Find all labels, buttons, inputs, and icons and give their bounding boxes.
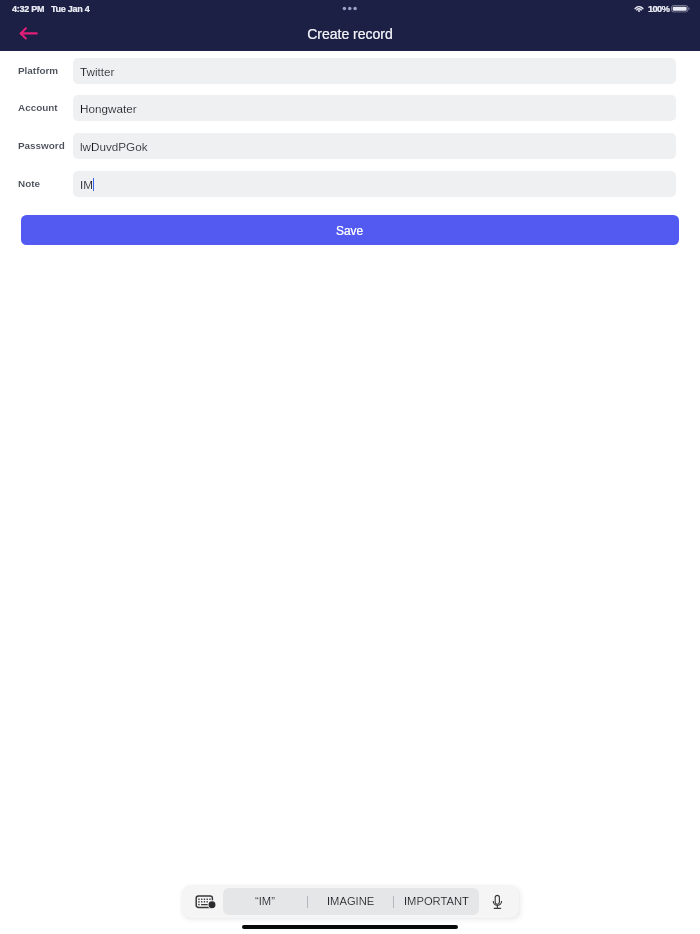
staticText: IMPORTANT [404, 895, 469, 908]
staticText: Account [18, 102, 58, 113]
button[interactable]: IMAGINE [308, 888, 393, 915]
button[interactable]: Save [21, 215, 679, 245]
staticText: Create record [0, 26, 700, 42]
button[interactable]: Hongwater [73, 95, 676, 121]
button[interactable]: IMPORTANT [394, 888, 479, 915]
staticText: 4:32 PM Tue Jan 4 [12, 4, 90, 14]
button[interactable]: lwDuvdPGok [73, 133, 676, 159]
staticText: IM [80, 178, 93, 191]
staticText: 100% [648, 4, 670, 14]
staticText: lwDuvdPGok [80, 140, 148, 153]
button[interactable]: Keyboard [182, 885, 222, 918]
staticText: Save [336, 224, 364, 237]
button[interactable]: “IM” [223, 888, 307, 915]
staticText: IMAGINE [327, 895, 375, 908]
button[interactable]: IM [73, 171, 676, 197]
staticText: Hongwater [80, 102, 137, 115]
staticText: Password [18, 140, 65, 151]
button[interactable]: Back [8, 21, 48, 46]
staticText: Note [18, 178, 40, 189]
staticText: Platform [18, 65, 59, 76]
button[interactable]: Twitter [73, 58, 676, 84]
button[interactable]: Dictate [479, 885, 519, 918]
staticText: Twitter [80, 65, 115, 78]
staticText: “IM” [255, 895, 275, 908]
